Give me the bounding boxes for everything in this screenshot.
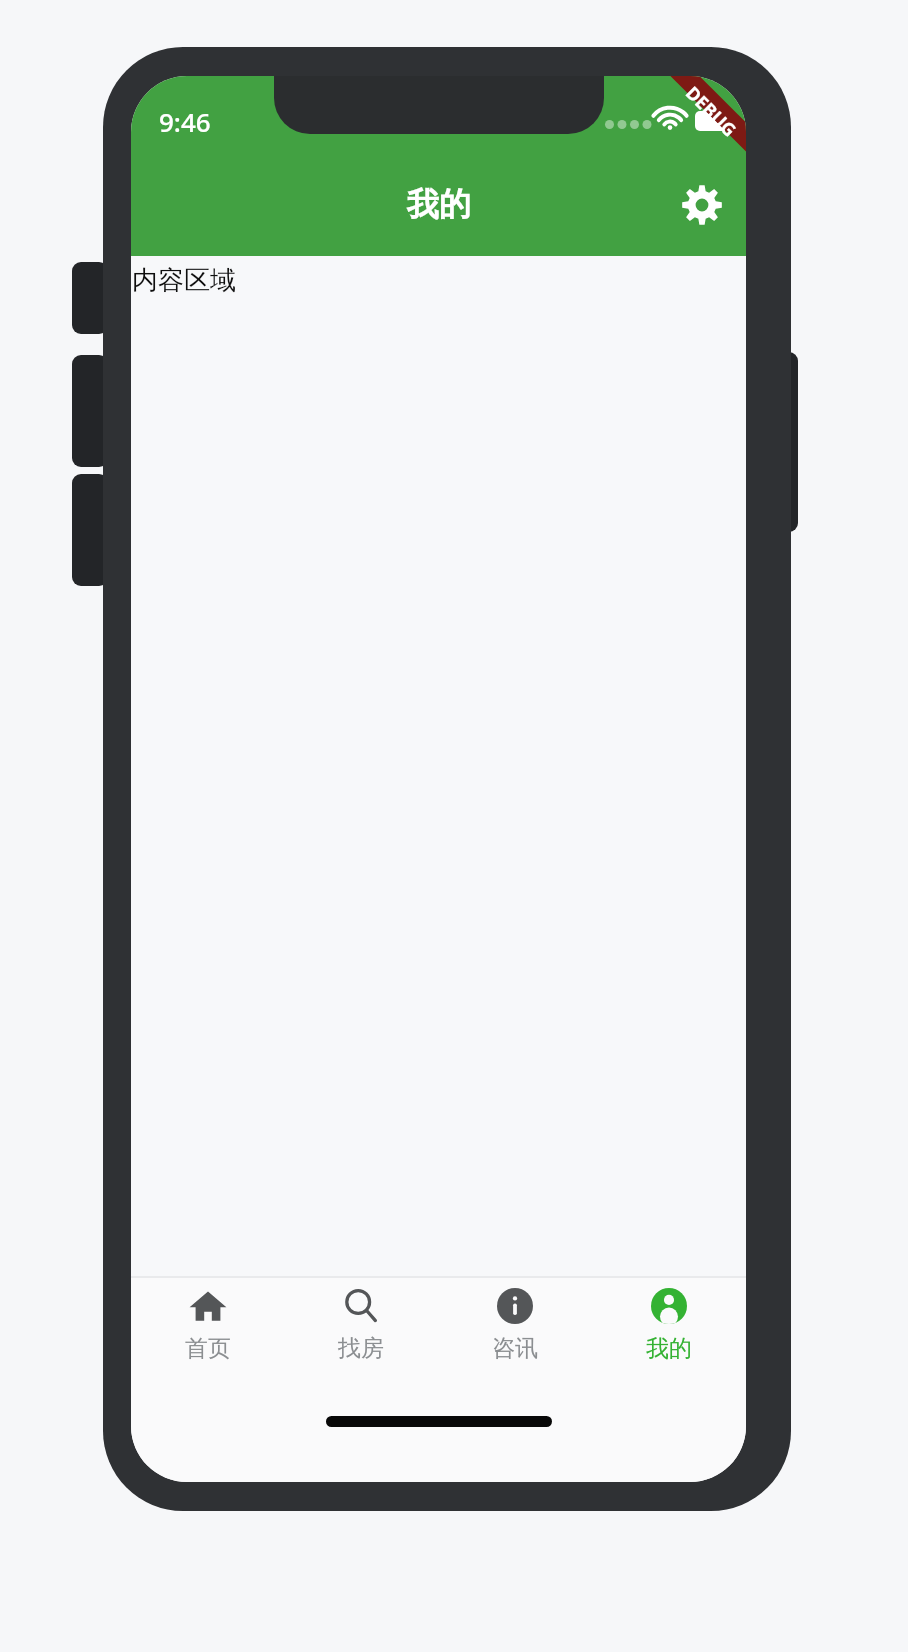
staticText: 找房	[338, 1334, 384, 1363]
staticText: 首页	[185, 1334, 231, 1363]
button[interactable]: Settings	[670, 173, 734, 237]
staticText: 9:46	[159, 104, 211, 139]
button[interactable]: 我的	[592, 1286, 746, 1412]
button[interactable]: 找房	[284, 1286, 438, 1412]
staticText: DEBUG	[680, 81, 742, 142]
staticText: 内容区域	[132, 264, 236, 297]
button[interactable]: 首页	[131, 1286, 284, 1412]
staticText: 我的	[646, 1334, 692, 1363]
button[interactable]: 咨讯	[438, 1286, 592, 1412]
staticText: 我的	[407, 184, 471, 224]
staticText: 咨讯	[492, 1334, 538, 1363]
